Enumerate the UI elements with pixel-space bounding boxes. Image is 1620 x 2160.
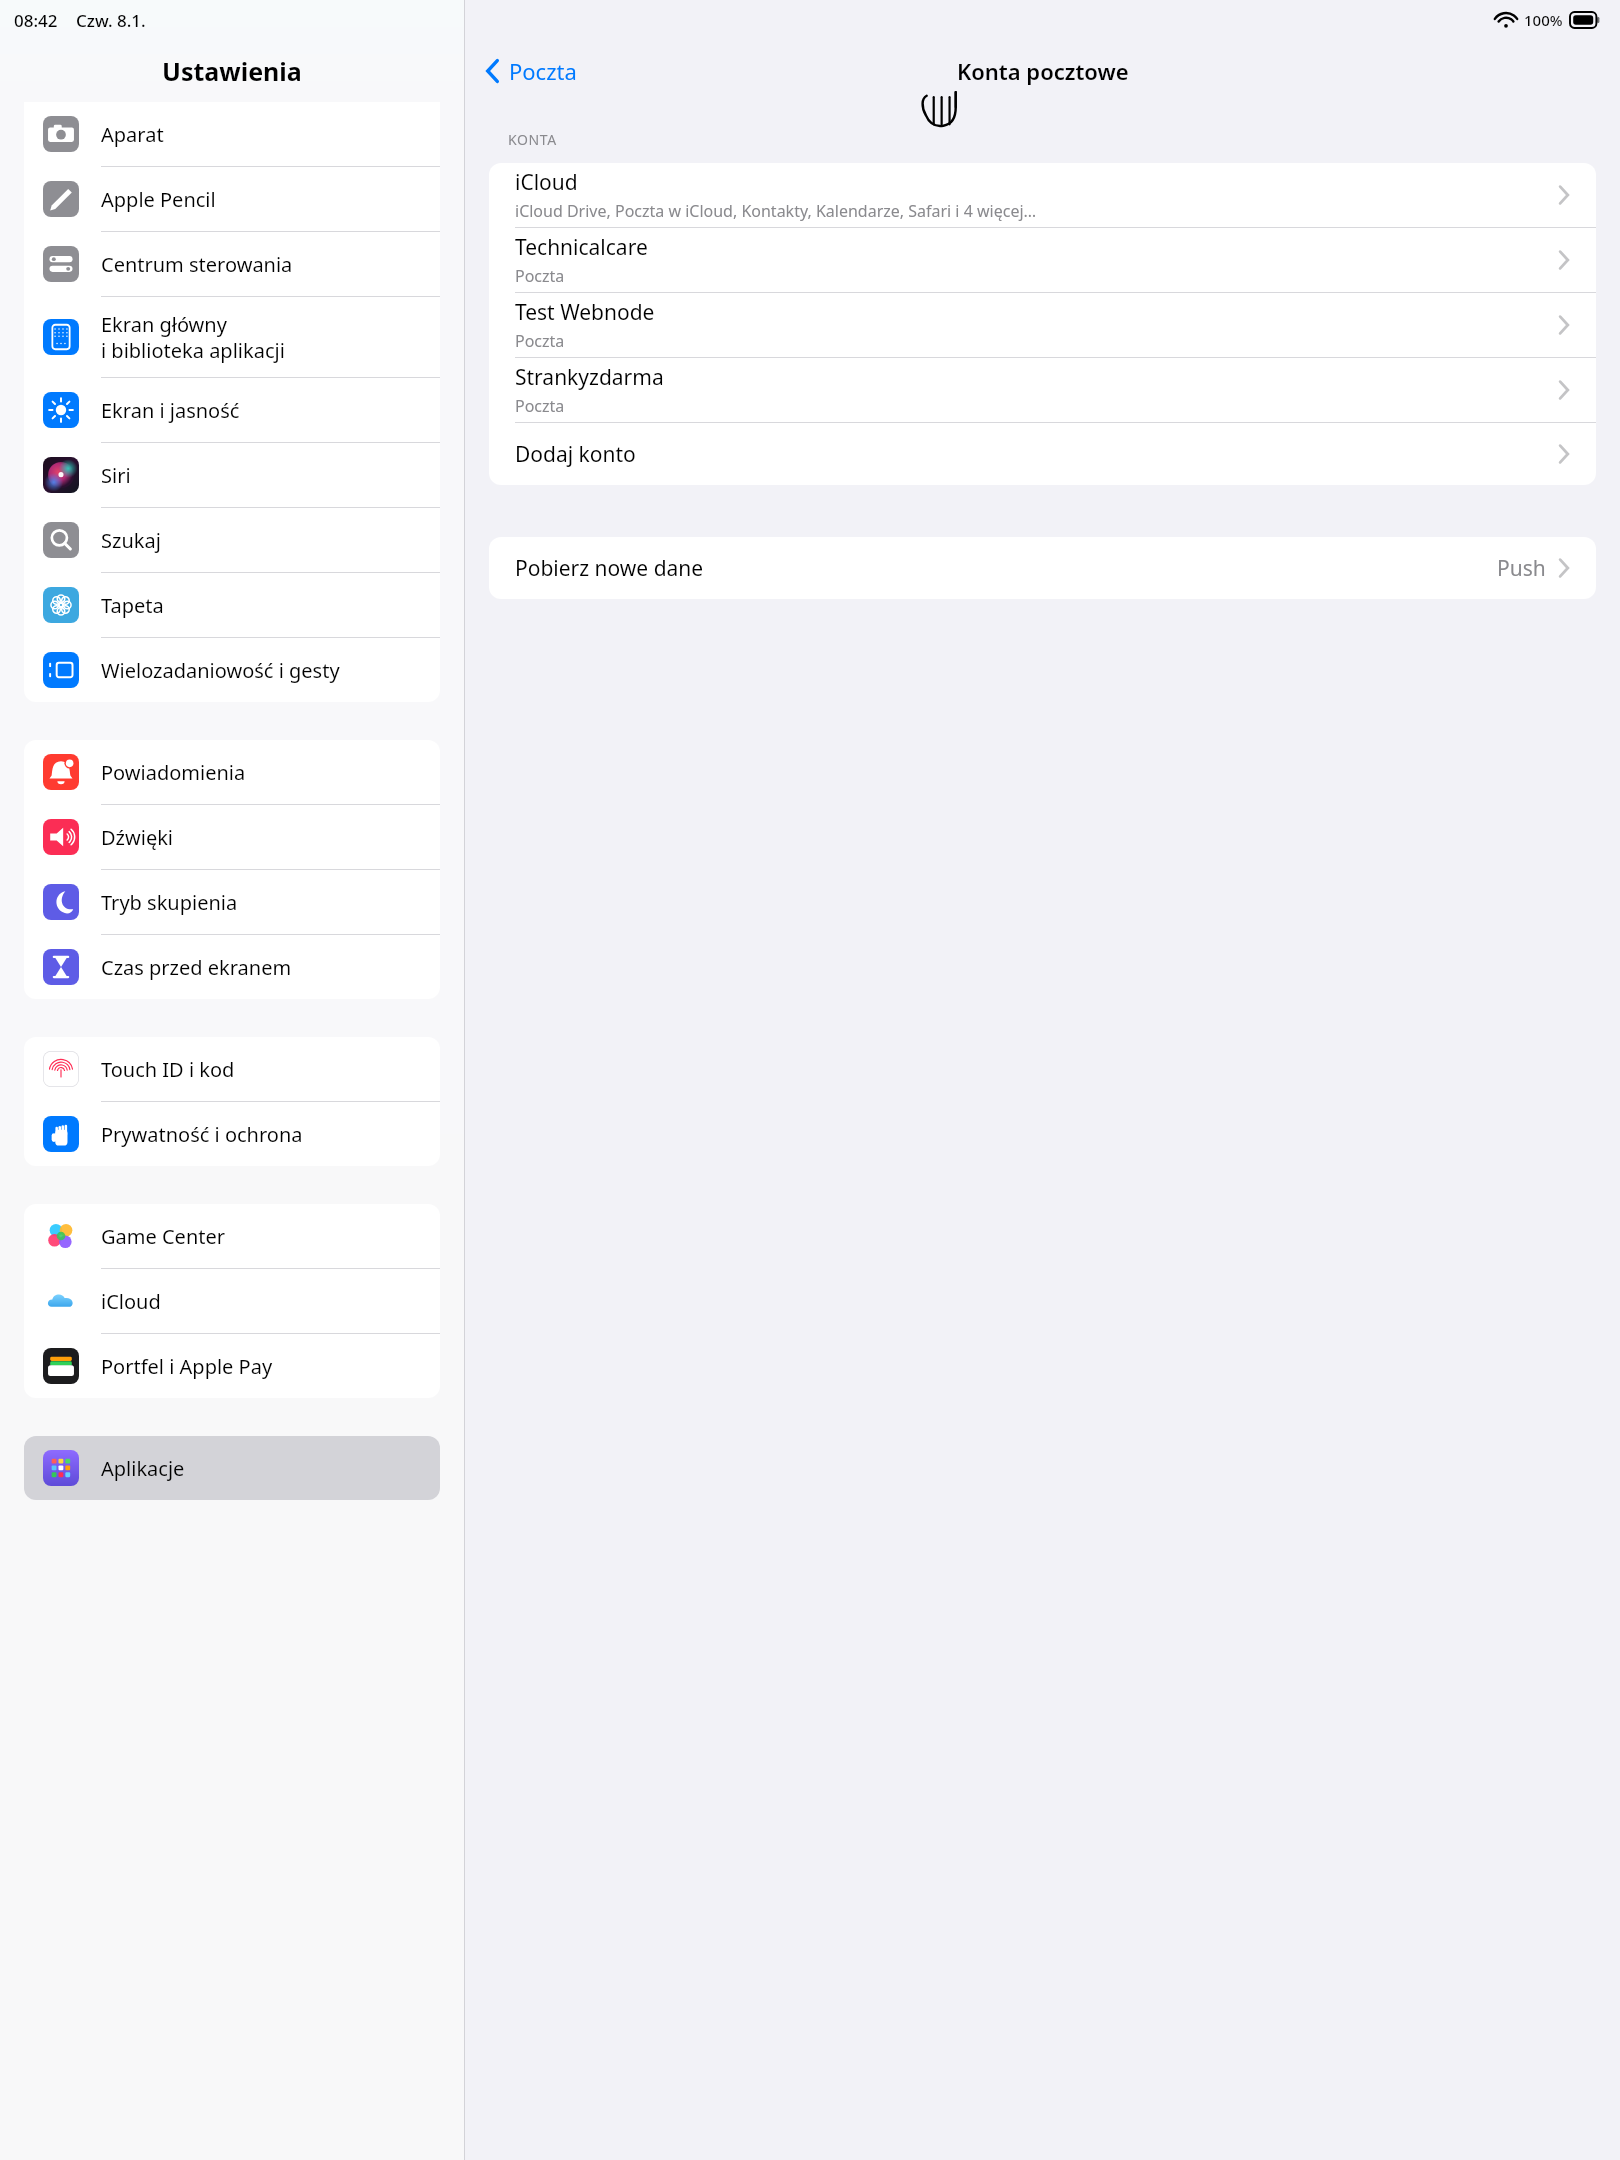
button[interactable]: Pobierz nowe dane [489, 537, 1596, 599]
staticText: Poczta [515, 330, 565, 352]
staticText: iCloud [101, 1288, 161, 1315]
button[interactable]: Technicalcare [489, 228, 1596, 293]
button[interactable]: Ekran i jasność [24, 378, 440, 443]
staticText: Szukaj [101, 527, 161, 554]
staticText: Apple Pencil [101, 186, 216, 213]
staticText: Czas przed ekranem [101, 954, 292, 981]
button[interactable]: Apple Pencil [24, 167, 440, 232]
staticText: Centrum sterowania [101, 251, 293, 278]
button[interactable]: Dźwięki [24, 805, 440, 870]
button[interactable]: Prywatność i ochrona [24, 1102, 440, 1166]
button[interactable]: Portfel i Apple Pay [24, 1334, 440, 1398]
staticText: Konta pocztowe [957, 56, 1129, 86]
button[interactable]: Game Center [24, 1204, 440, 1269]
button[interactable]: Aplikacje [24, 1436, 440, 1500]
button[interactable]: Aparat [24, 102, 440, 167]
button[interactable]: iCloud [24, 1269, 440, 1334]
button[interactable]: Tryb skupienia [24, 870, 440, 935]
staticText: 100% [1524, 10, 1563, 30]
staticText: Poczta [515, 395, 565, 417]
staticText: Strankyzdarma [515, 363, 664, 392]
staticText: Technicalcare [515, 233, 648, 262]
staticText: Portfel i Apple Pay [101, 1353, 273, 1380]
button[interactable]: Centrum sterowania [24, 232, 440, 297]
staticText: Aparat [101, 121, 164, 148]
staticText: Wielozadaniowość i gesty [101, 657, 340, 684]
button[interactable]: Tapeta [24, 573, 440, 638]
staticText: iCloud [515, 168, 578, 197]
staticText: Pobierz nowe dane [515, 554, 1497, 583]
staticText: Siri [101, 462, 131, 489]
button[interactable]: Czas przed ekranem [24, 935, 440, 999]
button[interactable]: Poczta [479, 52, 583, 90]
button[interactable]: Test Webnode [489, 293, 1596, 358]
staticText: Push [1497, 554, 1546, 583]
staticText: Dodaj konto [515, 440, 1558, 469]
staticText: Czw. 8.1. [76, 9, 146, 32]
button[interactable]: Touch ID i kod [24, 1037, 440, 1102]
staticText: Tryb skupienia [101, 889, 238, 916]
staticText: Poczta [509, 56, 577, 86]
staticText: Ustawienia [162, 54, 302, 88]
button[interactable]: iCloud [489, 163, 1596, 228]
staticText: Dźwięki [101, 824, 173, 851]
staticText: Game Center [101, 1223, 225, 1250]
button[interactable]: Powiadomienia [24, 740, 440, 805]
staticText: Touch ID i kod [101, 1056, 235, 1083]
button[interactable]: Strankyzdarma [489, 358, 1596, 423]
button[interactable]: Szukaj [24, 508, 440, 573]
staticText: Poczta [515, 265, 565, 287]
button[interactable]: Siri [24, 443, 440, 508]
staticText: iCloud Drive, Poczta w iCloud, Kontakty,… [515, 200, 1037, 222]
button[interactable]: Dodaj konto [489, 423, 1596, 485]
button[interactable]: Wielozadaniowość i gesty [24, 638, 440, 702]
staticText: Tapeta [101, 592, 164, 619]
staticText: 08:42 [14, 9, 58, 32]
staticText: Ekran główny i biblioteka aplikacji [101, 311, 285, 363]
staticText: Ekran i jasność [101, 397, 240, 424]
button[interactable]: Ekran główny i biblioteka aplikacji [24, 297, 440, 378]
staticText: Prywatność i ochrona [101, 1121, 303, 1148]
staticText: Aplikacje [101, 1455, 185, 1482]
staticText: Test Webnode [515, 298, 655, 327]
staticText: Powiadomienia [101, 759, 246, 786]
staticText: KONTA [508, 130, 557, 149]
